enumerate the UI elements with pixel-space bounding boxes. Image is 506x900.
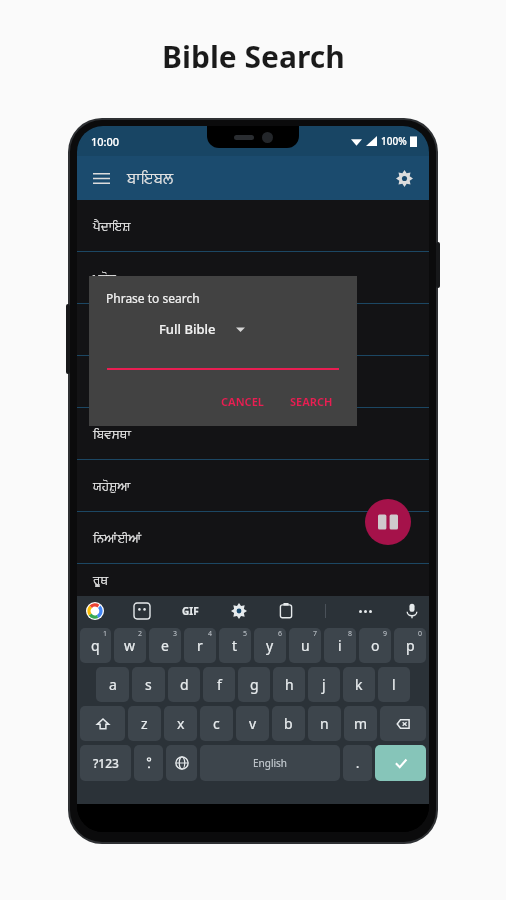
button[interactable]: q — [80, 628, 111, 663]
staticText: ਨਿਆਂਈਆਂ — [93, 532, 142, 544]
button[interactable]: i — [324, 628, 356, 663]
staticText: p — [406, 636, 415, 655]
button[interactable]: c — [200, 706, 233, 741]
staticText: 5 — [243, 629, 248, 639]
button[interactable]: ਗਿਣਤੀ — [77, 356, 429, 408]
staticText: f — [217, 675, 222, 694]
staticText: 1 — [103, 629, 108, 639]
staticText: e — [161, 636, 169, 655]
staticText: ?123 — [93, 755, 119, 771]
button[interactable]: ਖ਼ਰੋਜ — [77, 252, 429, 304]
button[interactable]: l — [378, 667, 410, 702]
staticText: ਪੈਦਾਇਸ਼ — [93, 220, 131, 232]
button[interactable]: w — [114, 628, 146, 663]
button[interactable]: Stickers — [134, 603, 150, 619]
staticText: 3 — [173, 629, 178, 639]
staticText: 6 — [278, 629, 283, 639]
staticText: m — [354, 714, 368, 733]
button[interactable]: Open book — [365, 499, 411, 545]
staticText: w — [124, 636, 136, 655]
button[interactable]: ਬਿਵਸਥਾ — [77, 408, 429, 460]
button[interactable]: b — [272, 706, 305, 741]
button[interactable]: d — [168, 667, 200, 702]
staticText: b — [284, 714, 293, 733]
button[interactable]: o — [359, 628, 391, 663]
staticText: c — [213, 714, 220, 733]
staticText: y — [266, 636, 274, 655]
staticText: x — [177, 714, 185, 733]
button[interactable]: a — [96, 667, 129, 702]
staticText: l — [392, 675, 396, 694]
button[interactable]: n — [308, 706, 341, 741]
staticText: ਖ਼ਰੋਜ — [93, 272, 116, 284]
button[interactable]: t — [219, 628, 251, 663]
button[interactable]: Full Bible — [159, 320, 245, 338]
button[interactable]: Settings — [387, 161, 421, 195]
staticText: 8 — [348, 629, 353, 639]
button[interactable]: GIF — [180, 602, 201, 620]
button[interactable]: English — [200, 745, 340, 781]
staticText: ਰੂਥ — [93, 574, 109, 586]
staticText: j — [322, 675, 326, 694]
button[interactable]: ਨਿਆਂਈਆਂ — [77, 512, 429, 564]
button[interactable]: ਯਹੋਸ਼ੁਆ — [77, 460, 429, 512]
button[interactable]: e — [149, 628, 181, 663]
button[interactable]: CANCEL — [213, 390, 272, 413]
button[interactable]: ਰੂਥ — [77, 564, 429, 596]
staticText: v — [249, 714, 257, 733]
button[interactable]: p — [394, 628, 426, 663]
button[interactable]: g — [238, 667, 270, 702]
button[interactable]: s — [132, 667, 165, 702]
button[interactable]: ਲੇਵੀ — [77, 304, 429, 356]
button[interactable]: Keyboard settings — [231, 603, 247, 619]
staticText: CANCEL — [221, 394, 264, 409]
button[interactable]: Voice input — [404, 603, 420, 619]
button[interactable]: Enter — [375, 745, 426, 781]
staticText: o — [371, 636, 380, 655]
staticText: 100% — [381, 134, 407, 148]
staticText: h — [285, 675, 294, 694]
button[interactable]: . — [343, 745, 372, 781]
staticText: a — [109, 675, 117, 694]
button[interactable]: Backspace — [380, 706, 426, 741]
button[interactable]: Google — [86, 602, 104, 620]
staticText: 4 — [208, 629, 213, 639]
button[interactable]: y — [254, 628, 286, 663]
staticText: q — [91, 636, 100, 655]
button[interactable]: z — [128, 706, 161, 741]
staticText: GIF — [182, 604, 199, 618]
button[interactable]: j — [308, 667, 340, 702]
staticText: 2 — [138, 629, 143, 639]
button[interactable]: x — [164, 706, 197, 741]
staticText: 9 — [383, 629, 388, 639]
staticText: u — [301, 636, 310, 655]
button[interactable]: ?123 — [80, 745, 131, 781]
staticText: s — [145, 675, 152, 694]
button[interactable]: v — [236, 706, 269, 741]
button[interactable]: u — [289, 628, 321, 663]
staticText: SEARCH — [290, 394, 333, 409]
staticText: . — [356, 755, 360, 771]
staticText: g — [250, 675, 259, 694]
staticText: n — [320, 714, 329, 733]
staticText: Phrase to search — [106, 290, 200, 306]
button[interactable]: m — [344, 706, 377, 741]
button[interactable]: SEARCH — [282, 390, 341, 413]
button[interactable]: Comma — [134, 745, 163, 781]
button[interactable]: Change language — [166, 745, 197, 781]
button[interactable]: Clipboard — [278, 603, 294, 619]
button[interactable]: Shift — [80, 706, 125, 741]
button[interactable]: f — [203, 667, 235, 702]
staticText: 10:00 — [91, 134, 120, 149]
button[interactable]: Menu — [83, 160, 119, 196]
button[interactable]: More options — [357, 603, 373, 619]
staticText: 7 — [313, 629, 318, 639]
staticText: z — [141, 714, 148, 733]
button[interactable]: r — [184, 628, 216, 663]
button[interactable]: k — [343, 667, 375, 702]
button[interactable]: ਪੈਦਾਇਸ਼ — [77, 200, 429, 252]
button[interactable]: h — [273, 667, 305, 702]
staticText: 0 — [418, 629, 423, 639]
